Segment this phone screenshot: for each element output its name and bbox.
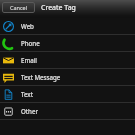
staticText: Other bbox=[21, 107, 38, 115]
staticText: Web bbox=[21, 22, 34, 30]
staticText: Create Tag bbox=[41, 3, 76, 13]
staticText: Cancel bbox=[10, 4, 28, 11]
staticText: Text bbox=[21, 90, 33, 98]
button[interactable]: Text bbox=[0, 86, 135, 103]
button[interactable]: Phone bbox=[0, 35, 135, 52]
button[interactable]: Web bbox=[0, 18, 135, 35]
staticText: Phone bbox=[21, 39, 40, 47]
button[interactable]: Text Message bbox=[0, 69, 135, 86]
button[interactable]: Cancel bbox=[2, 2, 35, 13]
button[interactable]: Email bbox=[0, 52, 135, 69]
staticText: Text Message bbox=[21, 73, 61, 81]
button[interactable]: Other bbox=[0, 103, 135, 120]
staticText: Email bbox=[21, 56, 37, 64]
